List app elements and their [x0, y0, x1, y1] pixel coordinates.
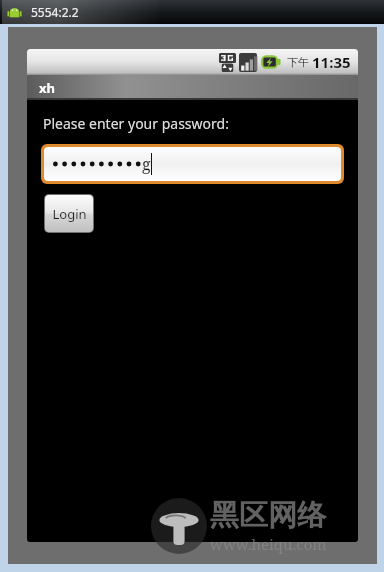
staticText: g [142, 153, 151, 175]
other: Site logo [151, 498, 207, 554]
button[interactable]: g [44, 147, 341, 181]
staticText: 黑区网络 [210, 497, 326, 534]
staticText: 下午 [287, 55, 309, 69]
staticText: xh [39, 79, 55, 97]
staticText: www.heiqu.com [210, 534, 327, 554]
staticText: 5554:2.2 [31, 4, 79, 20]
button[interactable]: Login [45, 195, 93, 232]
staticText: 11:35 [312, 52, 351, 72]
staticText: Login [52, 205, 87, 223]
staticText: Please enter your password: [43, 114, 229, 133]
